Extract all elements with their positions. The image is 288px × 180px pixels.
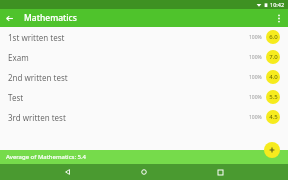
button[interactable]: More options (270, 9, 288, 27)
staticText: 100% (249, 94, 262, 101)
staticText: 100% (249, 34, 262, 41)
button[interactable]: Add grade (264, 142, 280, 158)
button[interactable]: Test (0, 87, 288, 107)
staticText: 7.0 (269, 53, 278, 61)
staticText: 100% (249, 74, 262, 81)
staticText: 1st written test (8, 32, 65, 43)
staticText: Mathematics (24, 12, 77, 24)
button[interactable]: Recents (212, 164, 228, 180)
staticText: Exam (8, 52, 29, 63)
staticText: 100% (249, 114, 262, 121)
button[interactable]: Home (136, 164, 152, 180)
staticText: 4.0 (269, 73, 278, 81)
button[interactable]: 2nd written test (0, 67, 288, 87)
staticText: 6.0 (269, 33, 278, 41)
staticText: 100% (249, 54, 262, 61)
staticText: 5.5 (269, 93, 278, 101)
button[interactable]: Back (0, 9, 18, 27)
staticText: 3rd written test (8, 112, 66, 123)
staticText: 10:42 (270, 1, 285, 8)
staticText: Average of Mathematics: 5.4 (6, 153, 87, 161)
staticText: 4.5 (269, 113, 278, 121)
button[interactable]: 3rd written test (0, 107, 288, 127)
staticText: 2nd written test (8, 72, 68, 83)
button[interactable]: Back (60, 164, 76, 180)
staticText: Test (8, 92, 24, 103)
button[interactable]: Exam (0, 47, 288, 67)
button[interactable]: 1st written test (0, 27, 288, 47)
button[interactable]: Average of Mathematics: 5.4 (0, 150, 288, 164)
